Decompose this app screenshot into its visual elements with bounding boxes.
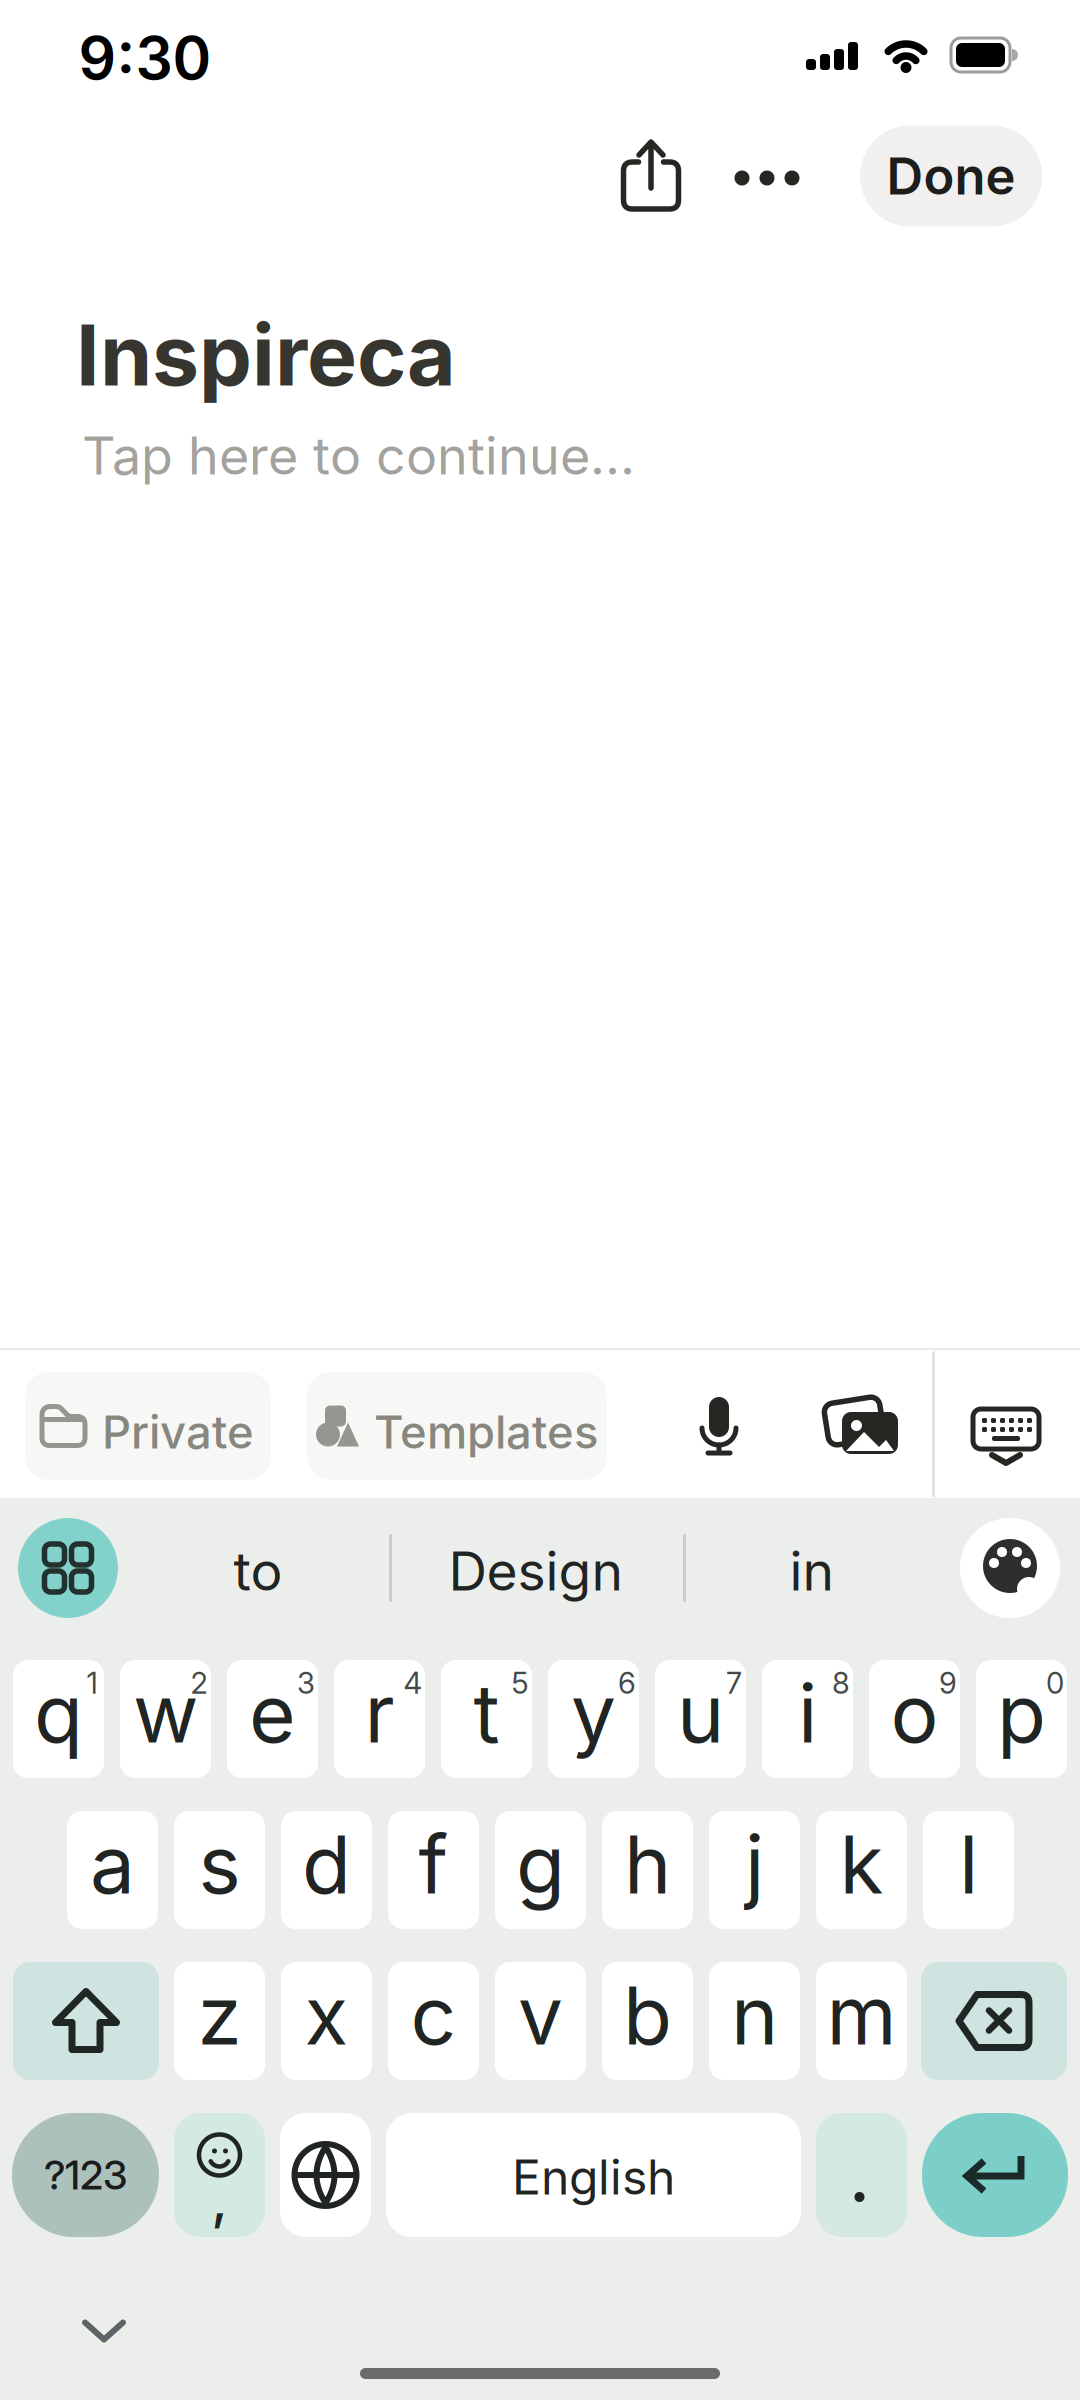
staticText: j xyxy=(745,1816,764,1913)
button[interactable]: to xyxy=(233,1539,282,1603)
staticText: b xyxy=(623,1967,672,2064)
button[interactable] xyxy=(623,141,678,209)
staticText: o xyxy=(890,1665,938,1762)
button[interactable]: f xyxy=(388,1811,479,1929)
staticText: 2 xyxy=(190,1665,207,1701)
button[interactable]: j xyxy=(709,1811,800,1929)
button[interactable]: c xyxy=(388,1962,479,2080)
button[interactable]: in xyxy=(789,1539,834,1603)
staticText: z xyxy=(197,1967,241,2064)
staticText: f xyxy=(418,1816,448,1913)
button[interactable] xyxy=(922,2113,1068,2237)
staticText: g xyxy=(516,1816,565,1913)
button[interactable] xyxy=(734,170,799,185)
staticText: q xyxy=(34,1665,83,1762)
staticText: 8 xyxy=(832,1665,850,1701)
staticText: , xyxy=(211,2167,227,2231)
button[interactable] xyxy=(823,1398,899,1456)
button[interactable] xyxy=(18,1518,118,1618)
button[interactable] xyxy=(280,2113,371,2237)
button[interactable] xyxy=(816,2113,907,2237)
button[interactable]: e xyxy=(227,1660,318,1778)
button[interactable]: a xyxy=(67,1811,158,1929)
staticText: Inspireca xyxy=(76,304,456,406)
button[interactable] xyxy=(921,1962,1067,2080)
button[interactable]: d xyxy=(281,1811,372,1929)
staticText: 1 xyxy=(86,1665,97,1701)
button[interactable]: m xyxy=(816,1962,907,2080)
staticText: to xyxy=(233,1539,282,1603)
staticText: i xyxy=(798,1665,817,1762)
button[interactable]: Done xyxy=(860,125,1042,226)
button[interactable]: o xyxy=(869,1660,960,1778)
staticText: s xyxy=(198,1816,240,1913)
staticText: a xyxy=(90,1816,135,1913)
button[interactable] xyxy=(85,2322,123,2339)
button[interactable]: w xyxy=(120,1660,211,1778)
button[interactable]: y xyxy=(548,1660,639,1778)
staticText: h xyxy=(624,1816,671,1913)
staticText: Done xyxy=(886,145,1015,207)
button[interactable]: u xyxy=(655,1660,746,1778)
button[interactable] xyxy=(701,1397,737,1455)
button[interactable] xyxy=(960,1518,1060,1618)
button[interactable]: l xyxy=(923,1811,1014,1929)
button[interactable] xyxy=(13,1962,159,2080)
button[interactable]: z xyxy=(174,1962,265,2080)
staticText: c xyxy=(410,1967,456,2064)
staticText: r xyxy=(364,1665,394,1762)
button[interactable]: t xyxy=(441,1660,532,1778)
staticText: p xyxy=(997,1665,1046,1762)
staticText: 6 xyxy=(618,1665,636,1701)
button[interactable]: Templates xyxy=(307,1372,607,1480)
staticText: w xyxy=(133,1665,198,1762)
button[interactable]: i xyxy=(762,1660,853,1778)
staticText: 9:30 xyxy=(78,22,211,93)
button[interactable]: Design xyxy=(448,1539,623,1603)
button[interactable]: p xyxy=(976,1660,1067,1778)
staticText: Tap here to continue... xyxy=(82,424,635,487)
staticText: u xyxy=(677,1665,724,1762)
button[interactable]: Private xyxy=(25,1372,271,1480)
staticText: x xyxy=(304,1967,348,2064)
button[interactable]: b xyxy=(602,1962,693,2080)
button[interactable]: r xyxy=(334,1660,425,1778)
button[interactable]: h xyxy=(602,1811,693,1929)
staticText: English xyxy=(512,2148,675,2206)
button[interactable]: English xyxy=(386,2113,801,2237)
staticText: 3 xyxy=(297,1665,315,1701)
staticText: Templates xyxy=(374,1405,598,1459)
staticText: m xyxy=(826,1967,896,2064)
button[interactable]: k xyxy=(816,1811,907,1929)
button[interactable]: g xyxy=(495,1811,586,1929)
button[interactable]: s xyxy=(174,1811,265,1929)
staticText: k xyxy=(839,1816,883,1913)
staticText: l xyxy=(959,1816,978,1913)
staticText: 4 xyxy=(403,1665,422,1701)
staticText: n xyxy=(731,1967,778,2064)
staticText: Private xyxy=(102,1405,254,1459)
staticText: 9 xyxy=(939,1665,957,1701)
staticText: 5 xyxy=(511,1665,528,1701)
staticText: v xyxy=(518,1967,563,2064)
staticText: d xyxy=(302,1816,351,1913)
staticText: 0 xyxy=(1046,1665,1064,1701)
button[interactable]: n xyxy=(709,1962,800,2080)
staticText: y xyxy=(571,1665,616,1762)
staticText: e xyxy=(249,1665,296,1762)
staticText: t xyxy=(473,1665,499,1762)
button[interactable]: v xyxy=(495,1962,586,2080)
staticText: Design xyxy=(448,1539,623,1603)
staticText: in xyxy=(789,1539,834,1603)
button[interactable]: q xyxy=(13,1660,104,1778)
button[interactable]: x xyxy=(281,1962,372,2080)
button[interactable] xyxy=(973,1409,1039,1465)
staticText: 7 xyxy=(726,1665,742,1701)
button[interactable]: ?123 xyxy=(12,2113,159,2237)
button[interactable]: , xyxy=(174,2113,265,2237)
staticText: ?123 xyxy=(44,2151,127,2199)
